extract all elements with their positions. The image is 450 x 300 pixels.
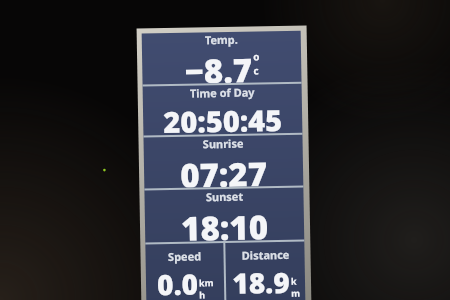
staticText: m [291,287,300,299]
staticText: −8.7 [184,47,252,84]
staticText: 20:50:45 [163,100,282,135]
staticText: Distance [241,247,290,263]
staticText: Speed [167,248,202,264]
button[interactable]: Temp. [142,31,302,84]
button[interactable]: Sunrise [143,135,303,188]
staticText: o [253,49,260,63]
button[interactable]: Distance [225,242,305,300]
staticText: 18.9 [232,263,290,300]
staticText: k [291,275,297,287]
staticText: 07:27 [180,151,267,188]
staticText: Sunrise [202,136,244,151]
staticText: Sunset [205,189,244,204]
button[interactable]: Time of Day [143,84,302,135]
staticText: 0.0 [157,264,198,300]
staticText: km [199,276,214,288]
staticText: Time of Day [190,84,255,101]
other: Cycling computer display [137,25,311,300]
staticText: 18:10 [181,204,268,242]
button[interactable]: Sunset [144,188,304,242]
staticText: h [199,288,205,300]
staticText: c [253,63,259,77]
staticText: Temp. [205,32,238,47]
button[interactable]: Speed [145,243,224,300]
